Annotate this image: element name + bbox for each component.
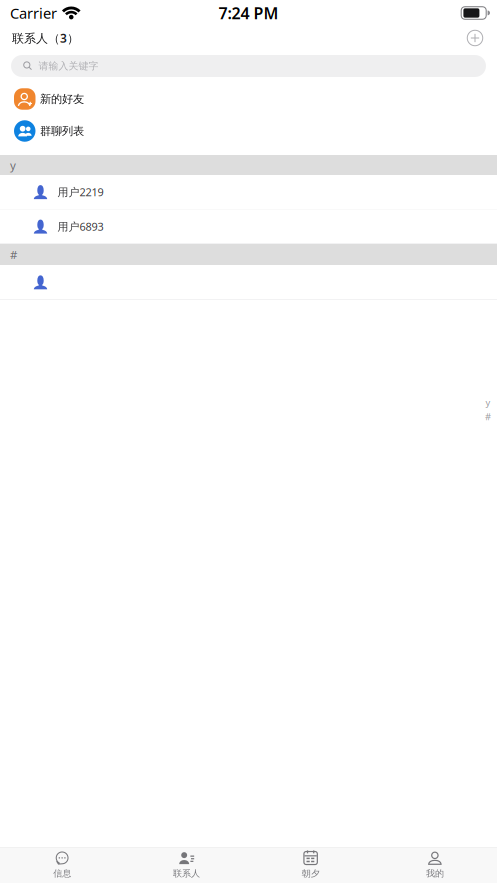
button[interactable]: 新的好友 xyxy=(0,83,497,115)
staticText: 信息 xyxy=(53,868,71,879)
staticText: # xyxy=(10,247,17,262)
button[interactable]: 我的 xyxy=(373,847,497,883)
staticText: 联系人（3） xyxy=(12,30,79,46)
staticText: y xyxy=(10,157,16,173)
button[interactable]: 用户2219 xyxy=(0,175,497,209)
staticText: # xyxy=(485,410,491,423)
button[interactable]: 联系人 xyxy=(124,847,248,883)
button[interactable]: 群聊列表 xyxy=(0,115,497,147)
staticText: 朝夕 xyxy=(302,868,320,879)
staticText: y xyxy=(485,396,490,409)
button[interactable]: Add xyxy=(460,26,490,50)
staticText: 请输入关键字 xyxy=(39,60,99,72)
staticText: 群聊列表 xyxy=(40,124,84,138)
staticText: 新的好友 xyxy=(40,92,84,106)
button[interactable]: 用户6893 xyxy=(0,209,497,244)
button[interactable]: 信息 xyxy=(0,847,124,883)
button[interactable]: 朝夕 xyxy=(248,847,373,883)
button[interactable]: 请输入关键字 xyxy=(11,55,486,77)
staticText: 用户2219 xyxy=(57,185,103,199)
staticText: 用户6893 xyxy=(57,219,103,234)
staticText: Carrier xyxy=(10,3,57,23)
staticText: 7:24 PM xyxy=(218,2,278,24)
button[interactable] xyxy=(0,265,497,300)
staticText: 联系人 xyxy=(173,868,200,879)
staticText: 我的 xyxy=(426,868,444,879)
